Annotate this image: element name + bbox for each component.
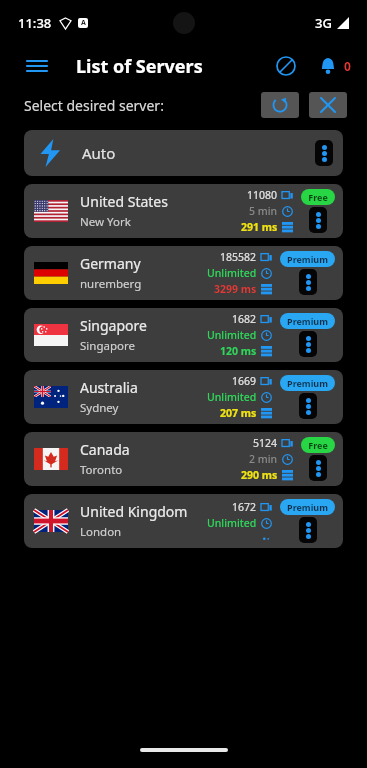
button[interactable]: Close bbox=[309, 92, 347, 118]
button[interactable]: More options bbox=[299, 393, 317, 419]
staticText: 1669 bbox=[232, 374, 257, 388]
button[interactable]: Canada bbox=[24, 432, 343, 486]
staticText: 5124 bbox=[253, 436, 278, 450]
button[interactable]: More options bbox=[299, 517, 317, 543]
staticText: 185582 bbox=[220, 250, 257, 264]
staticText: London bbox=[80, 524, 122, 540]
staticText: Select desired server: bbox=[24, 96, 164, 115]
staticText: Australia bbox=[80, 378, 138, 397]
button[interactable]: More options bbox=[309, 455, 327, 481]
staticText: nuremberg bbox=[80, 276, 142, 292]
button[interactable]: Menu bbox=[24, 53, 50, 79]
staticText: Unlimited bbox=[207, 266, 257, 280]
staticText: 5 min bbox=[249, 204, 278, 218]
staticText: Premium bbox=[287, 501, 328, 513]
staticText: 3299 ms bbox=[214, 282, 257, 296]
button[interactable]: More options bbox=[299, 269, 317, 295]
button[interactable]: Auto bbox=[24, 130, 343, 176]
staticText: Singapore bbox=[80, 316, 147, 335]
staticText: Auto bbox=[82, 143, 116, 163]
staticText: Sydney bbox=[80, 400, 119, 416]
button[interactable]: Free bbox=[308, 191, 328, 203]
staticText: 0 bbox=[344, 58, 351, 74]
staticText: Germany bbox=[80, 254, 141, 273]
button[interactable]: Germany bbox=[24, 246, 343, 300]
staticText: A bbox=[81, 18, 86, 28]
staticText: Premium bbox=[287, 253, 328, 265]
staticText: United States bbox=[80, 192, 168, 211]
button[interactable]: More options bbox=[315, 140, 333, 166]
staticText: 11080 bbox=[247, 188, 278, 202]
staticText: Unlimited bbox=[207, 390, 257, 404]
staticText: United Kingdom bbox=[80, 502, 188, 521]
staticText: Free bbox=[308, 191, 328, 203]
staticText: 290 ms bbox=[241, 468, 278, 482]
button[interactable]: Refresh bbox=[261, 92, 299, 118]
button[interactable]: Premium bbox=[287, 501, 328, 513]
staticText: 11:38 bbox=[18, 14, 52, 32]
button[interactable]: Premium bbox=[287, 315, 328, 327]
button[interactable]: Premium bbox=[287, 253, 328, 265]
button[interactable]: Australia bbox=[24, 370, 343, 424]
staticText: 1682 bbox=[232, 312, 257, 326]
staticText: 207 ms bbox=[220, 406, 257, 420]
staticText: List of Servers bbox=[76, 54, 203, 79]
staticText: New York bbox=[80, 214, 131, 230]
button[interactable]: United Kingdom bbox=[24, 494, 343, 548]
button[interactable]: United States bbox=[24, 184, 343, 238]
staticText: Unlimited bbox=[207, 328, 257, 342]
staticText: 3G bbox=[315, 14, 332, 32]
staticText: 2 min bbox=[249, 452, 278, 466]
staticText: Premium bbox=[287, 377, 328, 389]
staticText: Singapore bbox=[80, 338, 135, 354]
staticText: Free bbox=[308, 439, 328, 451]
staticText: Toronto bbox=[80, 462, 123, 478]
staticText: Unlimited bbox=[207, 516, 257, 530]
button[interactable]: Notifications bbox=[315, 53, 341, 79]
button[interactable]: No ads bbox=[273, 53, 299, 79]
button[interactable]: More options bbox=[299, 331, 317, 357]
button[interactable]: Free bbox=[308, 439, 328, 451]
button[interactable]: Singapore bbox=[24, 308, 343, 362]
staticText: 120 ms bbox=[220, 344, 257, 358]
staticText: Canada bbox=[80, 440, 130, 459]
staticText: 1672 bbox=[232, 500, 257, 514]
staticText: Premium bbox=[287, 315, 328, 327]
button[interactable]: More options bbox=[309, 207, 327, 233]
staticText: 291 ms bbox=[241, 220, 278, 234]
button[interactable]: Premium bbox=[287, 377, 328, 389]
